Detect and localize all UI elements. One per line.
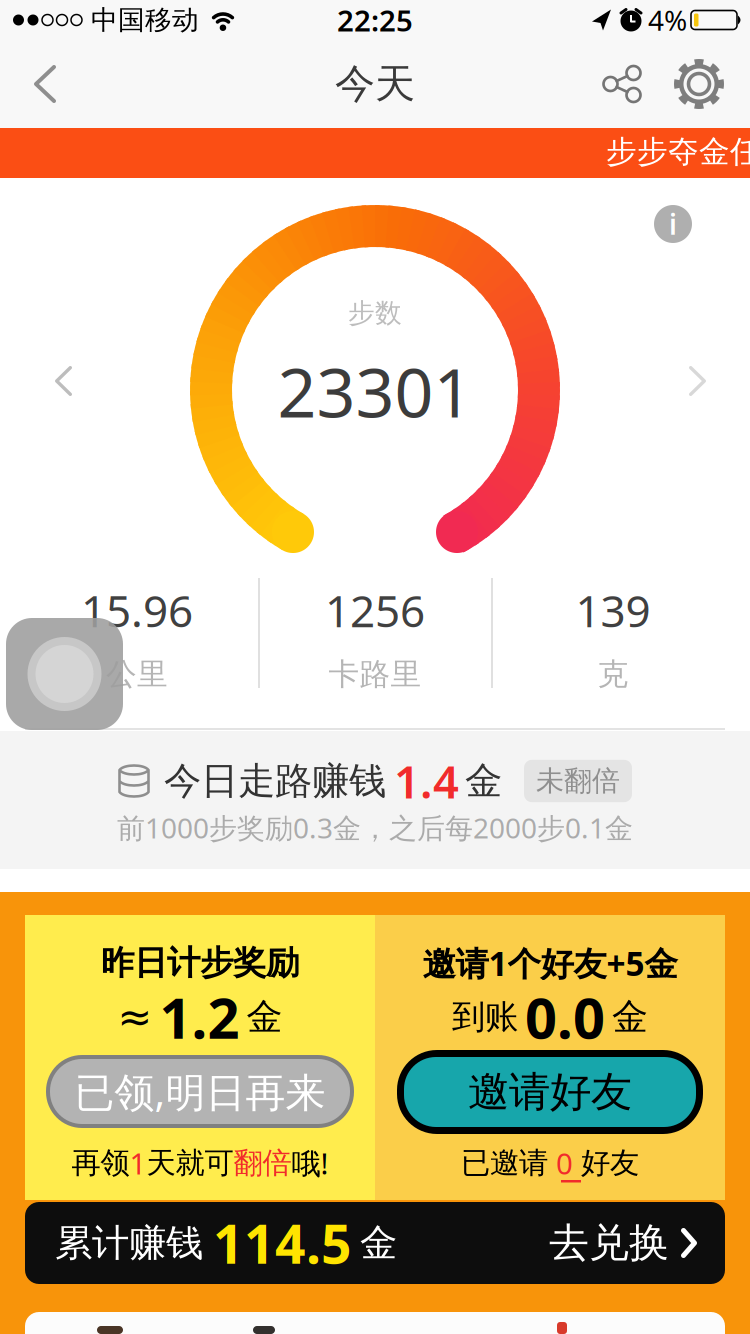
staticText: 邀请1个好友+5金: [422, 941, 677, 985]
staticText: 139: [575, 581, 650, 639]
button[interactable]: [675, 352, 720, 410]
staticText: 今日走路赚钱: [164, 758, 386, 804]
staticText: 前1000步奖励0.3金，之后每2000步0.1金: [117, 809, 633, 846]
button[interactable]: [668, 40, 730, 128]
button[interactable]: 已领,明日再来: [46, 1055, 354, 1128]
staticText: 天就可: [146, 1145, 233, 1181]
staticText: 再领: [71, 1145, 129, 1181]
staticText: 到账: [452, 996, 518, 1037]
staticText: 0.0: [525, 980, 605, 1054]
staticText: 中国移动: [91, 4, 199, 36]
staticText: 1.2: [159, 980, 239, 1054]
staticText: 卡路里: [328, 655, 421, 693]
button[interactable]: [0, 40, 76, 128]
button[interactable]: i: [654, 205, 692, 243]
staticText: 15.96: [81, 581, 193, 639]
staticText: 1.4: [394, 751, 459, 811]
staticText: 邀请好友: [468, 1067, 632, 1117]
button[interactable]: [41, 352, 86, 410]
staticText: 去兑换: [549, 1218, 669, 1267]
staticText: 公里: [106, 655, 168, 693]
staticText: i: [669, 205, 677, 243]
staticText: 金: [612, 995, 648, 1039]
staticText: 步数: [348, 297, 402, 329]
staticText: 金: [360, 1220, 397, 1266]
staticText: 昨日计步奖励: [101, 942, 299, 983]
staticText: 1: [129, 1143, 146, 1182]
button[interactable]: [592, 40, 652, 128]
staticText: 4%: [648, 1, 687, 39]
staticText: ≈: [117, 993, 152, 1040]
staticText: 未翻倍: [536, 764, 620, 798]
staticText: 22:25: [337, 0, 413, 39]
staticText: 好友: [581, 1145, 639, 1181]
staticText: 114.5: [213, 1208, 352, 1278]
button[interactable]: [6, 618, 123, 730]
staticText: 累计赚钱: [55, 1220, 203, 1266]
staticText: 23301: [277, 346, 472, 436]
staticText: 步步夺金任何: [606, 133, 750, 171]
staticText: 已邀请: [461, 1145, 548, 1181]
staticText: 已领,明日再来: [74, 1065, 325, 1118]
staticText: 哦!: [291, 1143, 328, 1182]
staticText: 翻倍: [233, 1145, 291, 1181]
staticText: 1256: [325, 581, 425, 639]
button[interactable]: 邀请好友: [397, 1050, 703, 1134]
button[interactable]: 累计赚钱: [25, 1202, 725, 1284]
staticText: 金: [465, 758, 502, 804]
staticText: 0: [548, 1143, 581, 1182]
staticText: 今天: [335, 59, 415, 108]
staticText: 金: [246, 995, 282, 1039]
staticText: 克: [597, 655, 628, 693]
